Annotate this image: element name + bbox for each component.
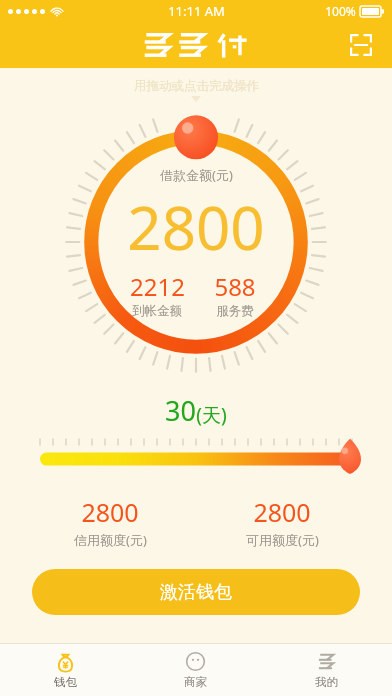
button[interactable]: 商家 bbox=[130, 644, 261, 696]
button[interactable]: 2800 bbox=[196, 495, 368, 549]
button[interactable]: 2800 bbox=[24, 495, 196, 549]
staticText: 信用额度(元) bbox=[74, 531, 147, 549]
staticText: 借款金额(元) bbox=[160, 166, 233, 184]
staticText: 服务费 bbox=[216, 303, 254, 319]
button[interactable]: 期限滑块 30 天 bbox=[0, 435, 392, 479]
staticText: 到帐金额 bbox=[132, 303, 182, 319]
staticText: 2800 bbox=[127, 186, 265, 268]
staticText: 钱包 bbox=[54, 675, 77, 689]
staticText: 2800 bbox=[253, 495, 311, 529]
staticText: 11:11 AM bbox=[168, 2, 225, 20]
other: 多多付 bbox=[142, 30, 250, 60]
button[interactable]: Scan bbox=[344, 28, 378, 62]
button[interactable]: 激活钱包 bbox=[32, 569, 360, 615]
staticText: (天) bbox=[196, 402, 227, 428]
staticText: 商家 bbox=[184, 675, 207, 689]
button[interactable]: 我的 bbox=[261, 644, 392, 696]
button[interactable]: 钱包 bbox=[0, 644, 130, 696]
staticText: 可用额度(元) bbox=[246, 531, 319, 549]
staticText: 激活钱包 bbox=[160, 581, 232, 604]
staticText: 100% bbox=[325, 3, 356, 19]
button[interactable]: 借款金额 2800 元 bbox=[60, 106, 332, 378]
staticText: 588 bbox=[214, 270, 256, 303]
staticText: 30 bbox=[165, 392, 196, 429]
staticText: 我的 bbox=[315, 675, 338, 689]
staticText: 2800 bbox=[81, 495, 139, 529]
staticText: 用拖动或点击完成操作 bbox=[134, 78, 259, 94]
staticText: 2212 bbox=[130, 270, 185, 303]
